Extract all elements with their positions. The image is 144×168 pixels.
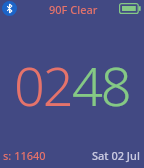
staticText: 90F Clear	[49, 2, 98, 17]
staticText: 48	[72, 48, 130, 122]
button[interactable]	[119, 3, 141, 14]
button[interactable]	[2, 1, 17, 16]
staticText: s: 11640	[3, 148, 46, 163]
staticText: Sat 02 Jul	[92, 148, 140, 163]
staticText: 02	[14, 48, 72, 122]
button[interactable]: 02	[14, 48, 130, 122]
